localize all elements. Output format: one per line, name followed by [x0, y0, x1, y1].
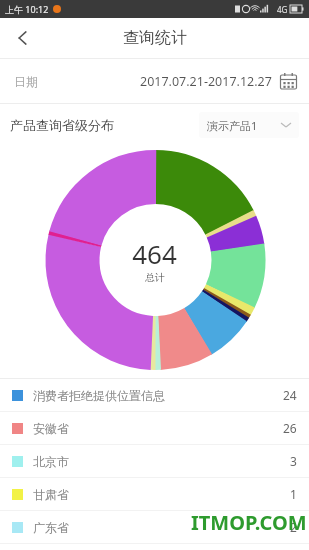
staticText: 总计: [145, 271, 165, 284]
staticText: ITMOP.COM: [191, 509, 307, 536]
button[interactable]: Back: [0, 18, 46, 58]
button[interactable]: 消费者拒绝提供位置信息: [0, 379, 309, 411]
staticText: 消费者拒绝提供位置信息: [33, 388, 165, 403]
staticText: 24: [283, 387, 297, 403]
staticText: 日期: [14, 74, 38, 89]
button[interactable]: 安徽省: [0, 412, 309, 444]
staticText: 2017.07.21-2017.12.27: [140, 73, 272, 90]
staticText: 26: [283, 420, 297, 436]
staticText: 4G: [277, 4, 288, 15]
staticText: 甘肃省: [33, 487, 69, 502]
staticText: 3: [290, 453, 297, 469]
staticText: 演示产品1: [207, 118, 258, 133]
staticText: 2: [290, 519, 297, 535]
staticText: 安徽省: [33, 421, 69, 436]
button[interactable]: 甘肃省: [0, 478, 309, 510]
staticText: 上午 10:12: [5, 3, 49, 15]
staticText: 查询统计: [123, 28, 187, 48]
staticText: 1: [290, 486, 297, 502]
staticText: 北京市: [33, 454, 69, 469]
button[interactable]: 演示产品1: [199, 112, 299, 138]
staticText: 广东省: [33, 520, 69, 535]
staticText: 464: [132, 236, 177, 271]
button[interactable]: 广东省: [0, 511, 309, 543]
button[interactable]: 日期: [0, 59, 309, 103]
button[interactable]: 北京市: [0, 445, 309, 477]
staticText: 产品查询省级分布: [10, 117, 114, 133]
